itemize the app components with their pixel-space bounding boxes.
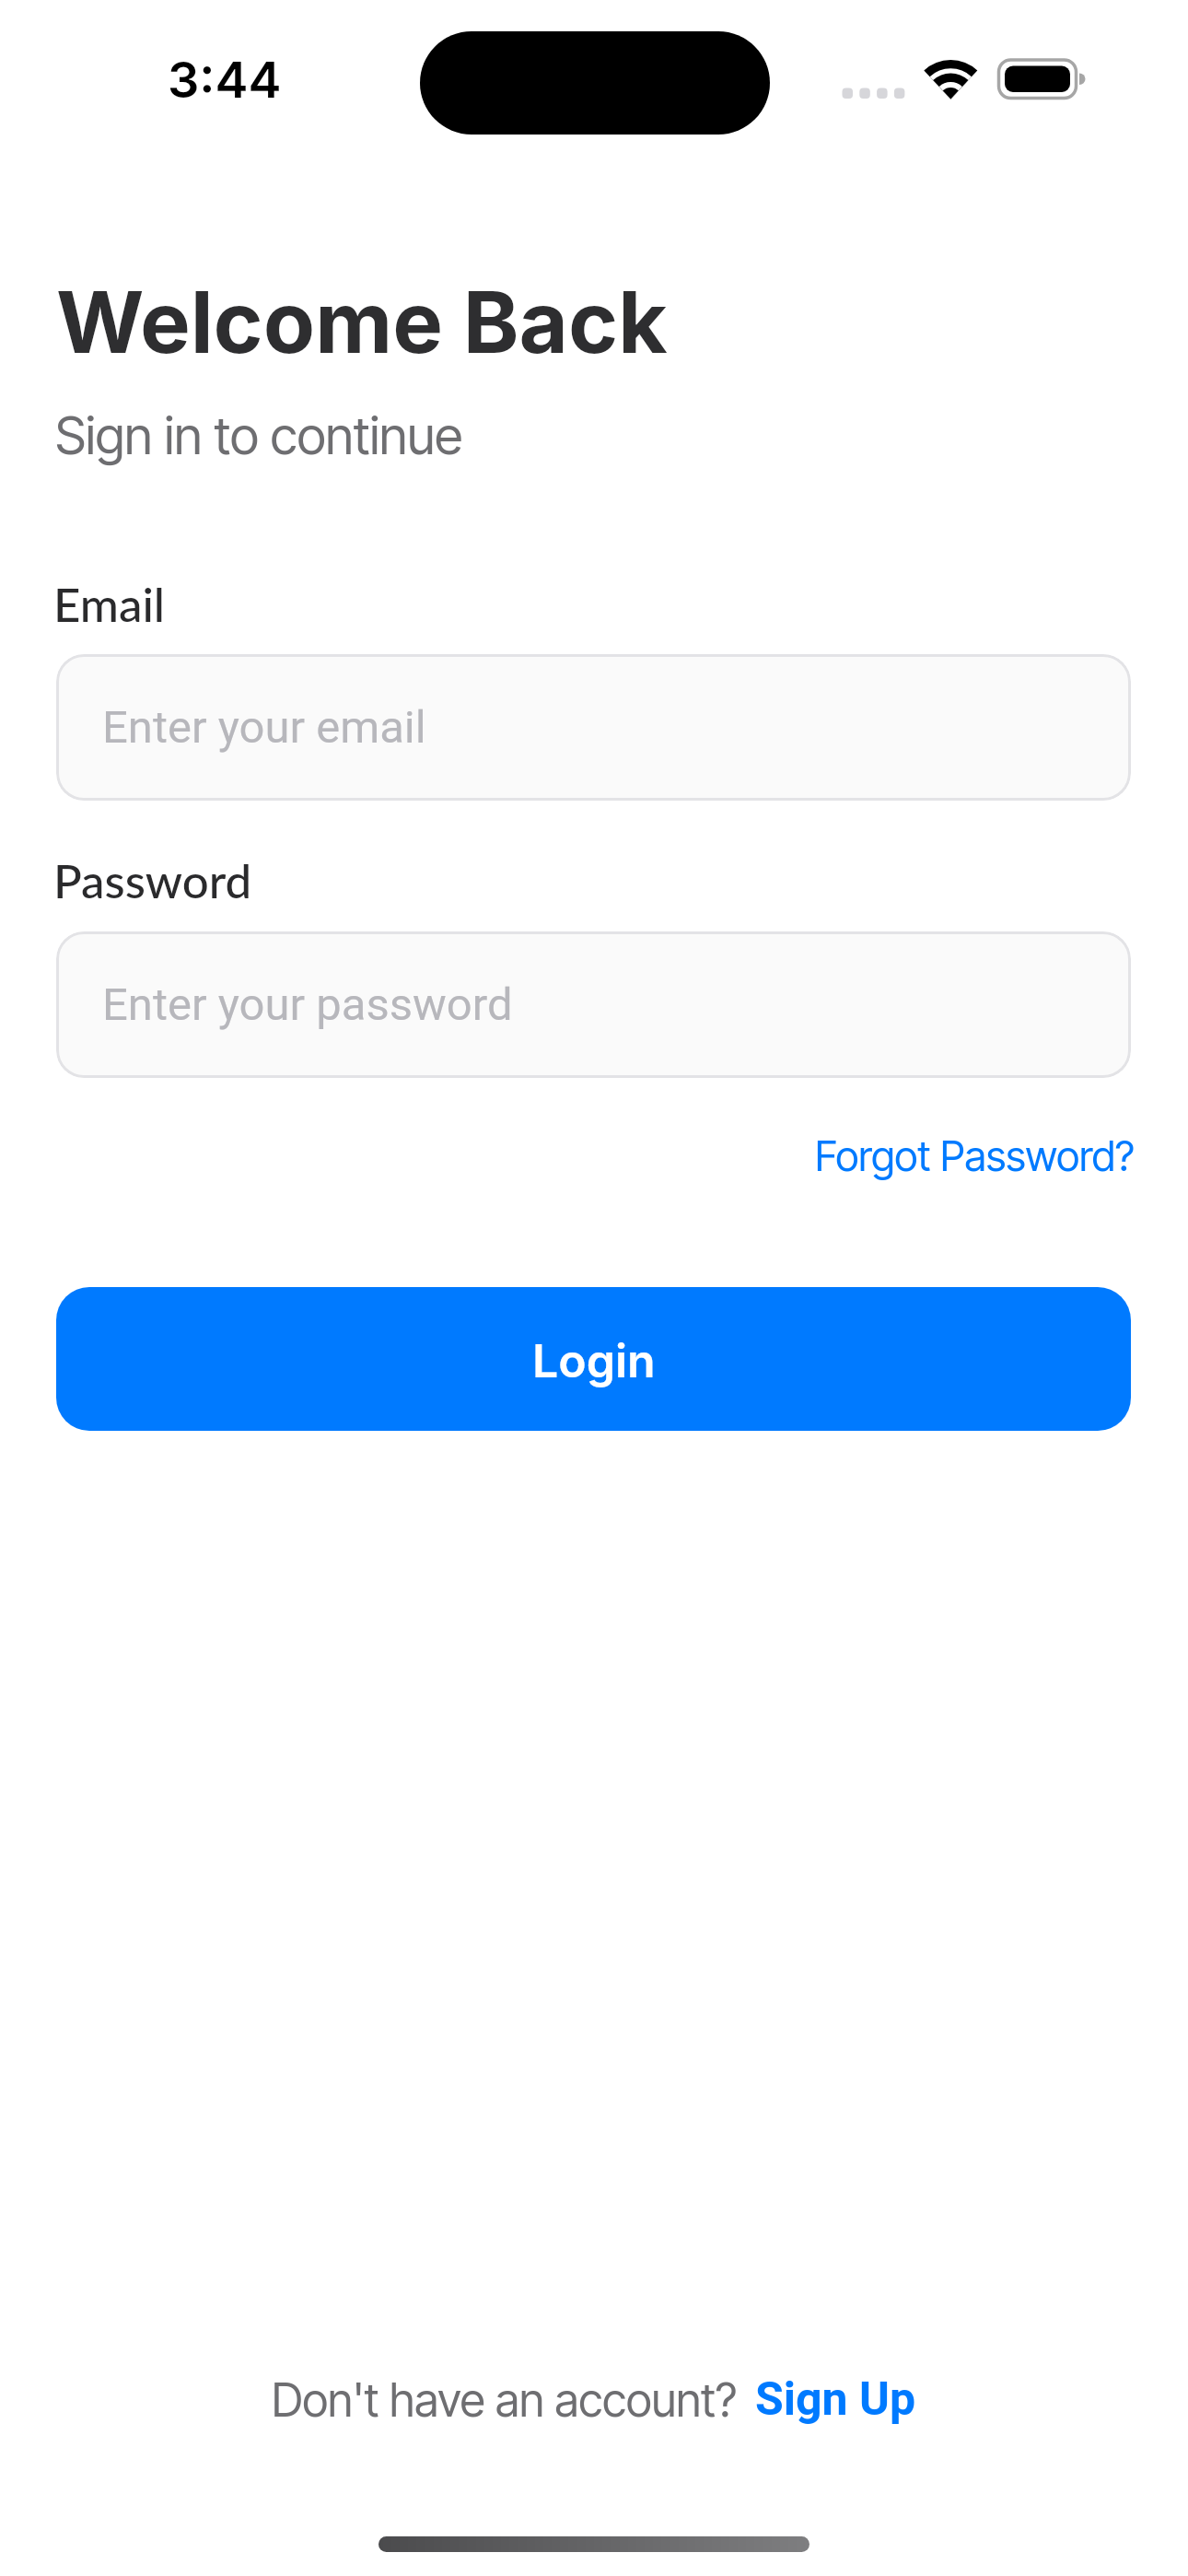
- staticText: Login: [532, 1333, 656, 1388]
- button[interactable]: Enter your email: [56, 654, 1131, 801]
- button[interactable]: Forgot Password?: [815, 1130, 1135, 1180]
- staticText: Sign Up: [755, 2372, 916, 2427]
- button[interactable]: Sign Up: [755, 2372, 916, 2427]
- staticText: 3:44: [168, 50, 282, 110]
- staticText: Sign in to continue: [55, 404, 463, 467]
- staticText: Password: [53, 852, 252, 908]
- staticText: Don't have an account?: [272, 2372, 737, 2428]
- staticText: Email: [53, 576, 165, 632]
- staticText: Welcome Back: [56, 271, 668, 373]
- staticText: Forgot Password?: [815, 1130, 1135, 1180]
- button[interactable]: Enter your password: [56, 931, 1131, 1078]
- button[interactable]: Login: [56, 1287, 1131, 1431]
- staticText: Enter your email: [102, 701, 426, 754]
- staticText: Enter your password: [102, 978, 513, 1031]
